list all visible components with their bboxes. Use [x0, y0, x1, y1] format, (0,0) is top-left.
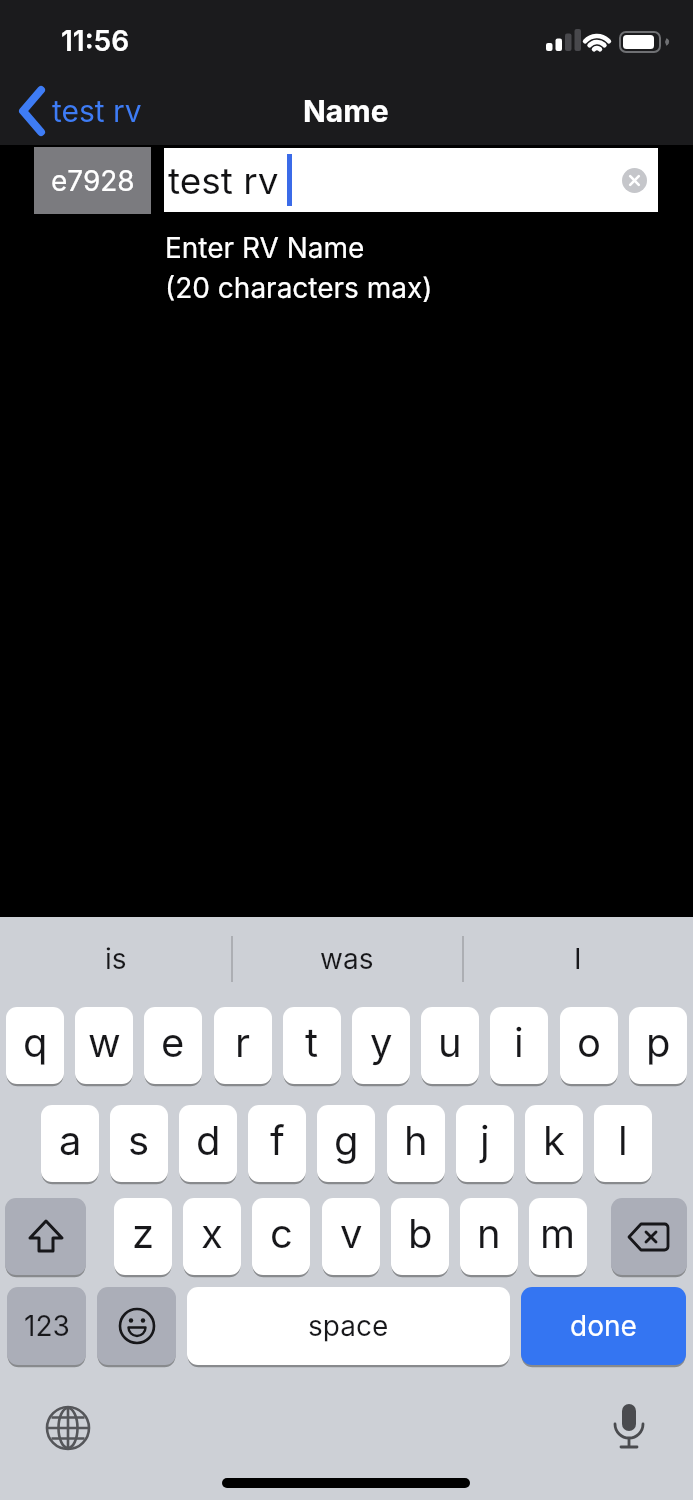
button[interactable]: s: [110, 1105, 168, 1182]
button[interactable]: test rv: [14, 86, 164, 136]
staticText: Name: [303, 93, 389, 129]
button[interactable]: v: [322, 1198, 380, 1275]
button[interactable]: space: [187, 1287, 510, 1365]
staticText: d: [196, 1116, 221, 1164]
button[interactable]: g: [317, 1105, 375, 1182]
button[interactable]: was: [231, 919, 462, 999]
staticText: done: [570, 1309, 637, 1343]
button[interactable]: z: [114, 1198, 172, 1275]
staticText: u: [438, 1018, 462, 1066]
staticText: t: [305, 1018, 319, 1066]
button[interactable]: is: [0, 919, 231, 999]
staticText: b: [408, 1209, 433, 1257]
staticText: s: [128, 1116, 150, 1164]
staticText: v: [340, 1209, 363, 1257]
button[interactable]: p: [629, 1007, 687, 1084]
staticText: I: [574, 942, 582, 976]
staticText: f: [270, 1116, 285, 1164]
staticText: was: [320, 942, 374, 976]
button[interactable]: n: [460, 1198, 518, 1275]
staticText: p: [646, 1018, 671, 1066]
button[interactable]: a: [41, 1105, 99, 1182]
button[interactable]: 123: [7, 1287, 86, 1365]
staticText: m: [540, 1209, 576, 1257]
staticText: c: [270, 1209, 293, 1257]
button[interactable]: I: [462, 919, 693, 999]
button[interactable]: done: [521, 1287, 686, 1365]
button[interactable]: [97, 1287, 176, 1365]
button[interactable]: t: [283, 1007, 341, 1084]
staticText: i: [514, 1018, 524, 1066]
staticText: space: [308, 1309, 389, 1343]
staticText: test rv: [168, 158, 279, 203]
button[interactable]: k: [525, 1105, 583, 1182]
staticText: h: [404, 1116, 428, 1164]
button[interactable]: d: [179, 1105, 237, 1182]
staticText: q: [23, 1018, 48, 1066]
staticText: 11:56: [61, 24, 130, 58]
staticText: r: [235, 1018, 251, 1066]
staticText: 123: [24, 1309, 70, 1343]
staticText: a: [59, 1116, 82, 1164]
staticText: j: [480, 1116, 490, 1164]
staticText: n: [477, 1209, 501, 1257]
staticText: test rv: [52, 93, 142, 129]
staticText: is: [105, 942, 127, 976]
button[interactable]: c: [252, 1198, 310, 1275]
staticText: g: [334, 1116, 359, 1164]
button[interactable]: y: [352, 1007, 410, 1084]
staticText: Enter RV Name: [165, 231, 365, 265]
button[interactable]: w: [75, 1007, 133, 1084]
button[interactable]: test rv: [164, 148, 658, 212]
staticText: l: [618, 1116, 628, 1164]
staticText: w: [88, 1018, 121, 1066]
button[interactable]: x: [183, 1198, 241, 1275]
staticText: e7928: [51, 164, 135, 198]
button[interactable]: f: [248, 1105, 306, 1182]
button[interactable]: h: [387, 1105, 445, 1182]
button[interactable]: l: [594, 1105, 652, 1182]
staticText: x: [201, 1209, 223, 1257]
button[interactable]: r: [214, 1007, 272, 1084]
button[interactable]: e: [144, 1007, 202, 1084]
button[interactable]: [611, 1198, 687, 1275]
staticText: o: [577, 1018, 601, 1066]
staticText: y: [370, 1018, 393, 1066]
button[interactable]: j: [456, 1105, 514, 1182]
button[interactable]: [5, 1198, 86, 1275]
button[interactable]: [44, 1404, 92, 1452]
button[interactable]: q: [6, 1007, 64, 1084]
staticText: z: [132, 1209, 155, 1257]
button[interactable]: m: [529, 1198, 587, 1275]
button[interactable]: o: [560, 1007, 618, 1084]
staticText: e: [161, 1018, 185, 1066]
button[interactable]: u: [421, 1007, 479, 1084]
button[interactable]: i: [490, 1007, 548, 1084]
staticText: (20 characters max): [165, 271, 433, 305]
staticText: k: [543, 1116, 565, 1164]
button[interactable]: [605, 1400, 653, 1458]
button[interactable]: b: [391, 1198, 449, 1275]
